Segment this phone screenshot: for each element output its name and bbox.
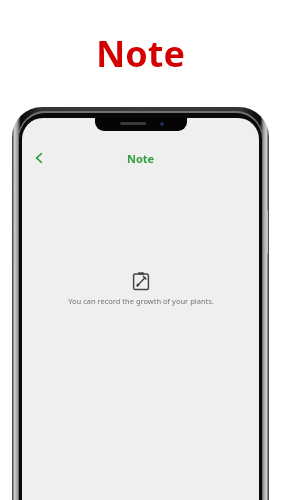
staticText: You can record the growth of your plants… <box>68 296 214 306</box>
staticText: Note <box>96 29 185 78</box>
staticText: Note <box>127 151 155 166</box>
button[interactable]: Back <box>27 146 51 170</box>
